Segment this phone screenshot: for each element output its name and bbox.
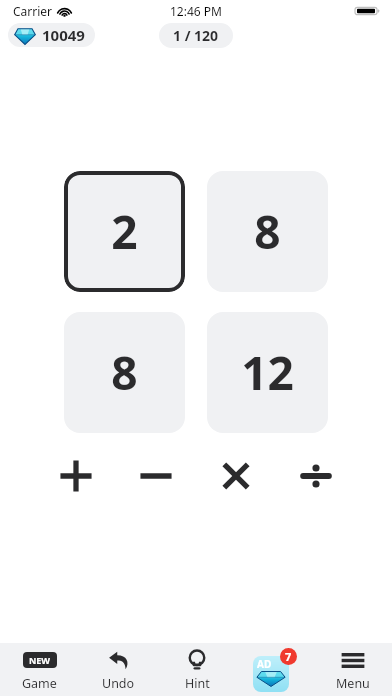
staticText: 7 xyxy=(285,649,292,664)
staticText: AD xyxy=(257,657,272,671)
staticText: 10049 xyxy=(42,25,85,45)
button[interactable]: Add xyxy=(52,452,100,500)
staticText: 12 xyxy=(241,341,294,404)
button[interactable]: Divide xyxy=(292,452,340,500)
staticText: Undo xyxy=(102,675,135,692)
button[interactable]: Menu xyxy=(314,643,392,696)
button[interactable]: 1 / 120 xyxy=(159,23,233,48)
staticText: Carrier xyxy=(13,3,53,19)
staticText: 8 xyxy=(111,341,138,404)
staticText: 12:46 PM xyxy=(170,3,222,19)
staticText: 2 xyxy=(111,200,138,263)
button[interactable]: 2 xyxy=(64,171,185,292)
button[interactable]: NEW xyxy=(0,643,79,696)
staticText: 8 xyxy=(254,200,281,263)
staticText: Menu xyxy=(336,675,370,692)
staticText: Game xyxy=(22,675,57,692)
button[interactable]: Hint xyxy=(158,643,236,696)
button[interactable]: 12 xyxy=(207,312,328,433)
button[interactable]: Subtract xyxy=(132,452,180,500)
button[interactable]: 8 xyxy=(64,312,185,433)
staticText: 1 / 120 xyxy=(173,26,219,45)
staticText: Hint xyxy=(185,675,210,692)
button[interactable]: 10049 xyxy=(8,23,95,47)
button[interactable]: Undo xyxy=(79,643,158,696)
staticText: NEW xyxy=(29,654,51,666)
button[interactable]: Multiply xyxy=(212,452,260,500)
button[interactable]: Watch ad for gems xyxy=(253,648,297,692)
button[interactable]: 8 xyxy=(207,171,328,292)
